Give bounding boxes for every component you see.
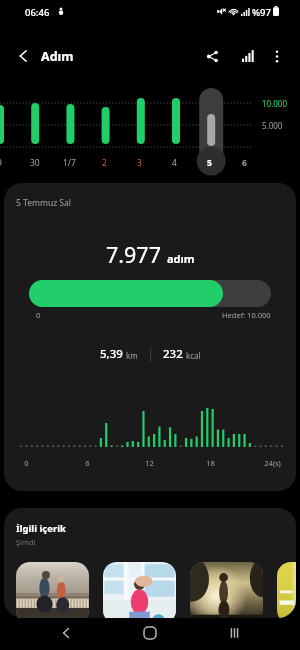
button[interactable]: Related content — [277, 562, 296, 618]
staticText: 5 Temmuz Sal — [16, 197, 71, 209]
staticText: 10.000 — [262, 98, 288, 109]
staticText: 24(s) — [264, 458, 281, 468]
staticText: 5.000 — [262, 120, 283, 131]
staticText: Hedef: 10.000 — [222, 310, 271, 320]
staticText: 6 — [242, 157, 247, 169]
button[interactable]: Related content — [16, 562, 89, 618]
staticText: 0 — [36, 310, 41, 320]
button[interactable]: Back — [9, 42, 37, 70]
staticText: 2 — [102, 157, 107, 169]
staticText: 6 — [85, 458, 90, 468]
button[interactable]: Back — [51, 618, 81, 648]
button[interactable]: Share — [198, 42, 226, 70]
button[interactable]: Statistics — [234, 42, 262, 70]
staticText: 18 — [206, 458, 215, 468]
button[interactable]: 4 — [157, 155, 192, 171]
button[interactable]: More options — [263, 42, 291, 70]
button[interactable]: Recents — [219, 618, 249, 648]
staticText: km — [126, 350, 138, 361]
staticText: 9 — [0, 157, 2, 169]
staticText: 1/7 — [63, 157, 76, 169]
staticText: 3 — [137, 157, 142, 169]
button[interactable]: 30 — [17, 155, 52, 171]
staticText: %97 — [252, 6, 271, 19]
staticText: 232 — [163, 346, 183, 362]
button[interactable]: 1/7 — [52, 155, 87, 171]
button[interactable]: 6 — [227, 155, 262, 171]
button[interactable]: 5 — [192, 155, 227, 171]
staticText: kcal — [186, 350, 201, 361]
staticText: 7.977 — [106, 240, 161, 269]
staticText: Şimdi — [16, 537, 36, 547]
button[interactable]: 5 Temmuz Sal — [4, 183, 296, 491]
button[interactable]: 3 — [122, 155, 157, 171]
staticText: Adım — [41, 48, 74, 65]
staticText: 12 — [145, 458, 154, 468]
staticText: İlgili içerik — [16, 522, 66, 535]
button[interactable]: Related content — [103, 562, 176, 618]
button[interactable]: 9 — [0, 155, 17, 171]
staticText: adım — [167, 251, 195, 266]
button[interactable]: 2 — [87, 155, 122, 171]
staticText: 06:46 — [25, 6, 50, 19]
staticText: 5 — [207, 157, 212, 169]
staticText: 5,39 — [100, 346, 123, 362]
button[interactable]: Related content — [190, 562, 263, 618]
staticText: 0 — [24, 458, 29, 468]
staticText: 30 — [30, 157, 40, 169]
staticText: 4 — [172, 157, 177, 169]
button[interactable]: Home — [135, 618, 165, 648]
